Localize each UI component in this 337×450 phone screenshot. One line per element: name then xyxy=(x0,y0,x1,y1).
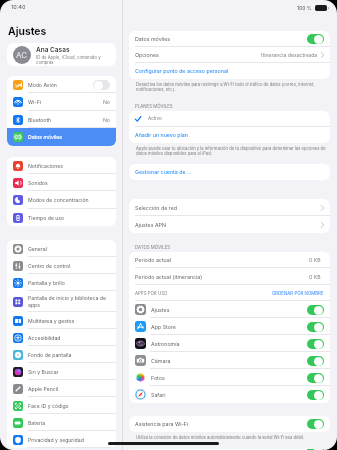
staticText: Activo xyxy=(148,116,162,122)
button[interactable]: Desactivar xyxy=(307,34,324,44)
button[interactable]: Modos de concentración xyxy=(7,191,116,209)
button[interactable]: Activo xyxy=(129,111,330,127)
staticText: DATOS MÓVILES xyxy=(135,245,171,250)
button[interactable]: Desactivar xyxy=(307,322,324,332)
button[interactable]: Selección de red xyxy=(129,199,330,216)
button[interactable]: Multitarea y gestos xyxy=(7,312,116,329)
button[interactable]: Bluetooth xyxy=(7,111,116,128)
staticText: Desactiva los datos móviles para restrin… xyxy=(136,82,328,92)
button[interactable]: Periodo actual xyxy=(129,252,330,268)
staticText: Siri y Buscar xyxy=(28,369,110,375)
staticText: Asistencia para Wi-Fi xyxy=(135,421,189,427)
button[interactable]: Fotos xyxy=(129,369,330,386)
button[interactable]: App Store xyxy=(129,318,330,335)
staticText: Ajustes xyxy=(8,25,47,37)
button[interactable]: Cámara xyxy=(129,352,330,369)
button[interactable]: Periodo actual (itinerancia) xyxy=(129,268,330,285)
button[interactable]: Sonidos xyxy=(7,174,116,191)
staticText: Ajustes APN xyxy=(135,222,166,228)
staticText: Wi-Fi xyxy=(28,99,103,105)
staticText: 0 KB xyxy=(309,274,321,280)
staticText: Utiliza la conexión de datos móviles aut… xyxy=(136,435,328,440)
button[interactable]: Desactivar xyxy=(307,339,324,349)
button[interactable]: ORDENAR POR NOMBRE xyxy=(272,291,324,296)
button[interactable]: Añadir un nuevo plan xyxy=(129,127,330,143)
button[interactable]: Batería xyxy=(7,414,116,431)
staticText: Periodo actual (itinerancia) xyxy=(135,274,203,280)
button[interactable]: Modo Avión xyxy=(7,76,116,93)
button[interactable]: Notificaciones xyxy=(7,157,116,174)
button[interactable]: Desactivar xyxy=(307,449,324,450)
staticText: Apple puede usar tu ubicación y la infor… xyxy=(136,146,328,156)
button[interactable]: Face ID y código xyxy=(7,397,116,414)
button[interactable]: General xyxy=(7,240,116,257)
button[interactable]: Opciones xyxy=(129,47,330,63)
staticText: Privacidad y seguridad xyxy=(28,437,110,443)
button[interactable]: Desactivar xyxy=(307,390,324,400)
staticText: Fotos xyxy=(151,375,165,381)
button[interactable]: Apple Pencil xyxy=(7,380,116,397)
staticText: Face ID y código xyxy=(28,403,110,409)
button[interactable]: Gestionar cuenta de ... xyxy=(129,164,330,180)
staticText: No xyxy=(103,99,110,105)
button[interactable]: Desactivar xyxy=(307,419,324,429)
staticText: Astronomía xyxy=(151,341,180,347)
button[interactable]: Ajustes xyxy=(129,301,330,318)
staticText: Ana Casas xyxy=(36,46,70,54)
button[interactable]: Activar xyxy=(93,80,110,90)
button[interactable]: Centro de control xyxy=(7,257,116,274)
staticText: ID de Apple, iCloud, contenido y compras xyxy=(36,55,112,65)
button[interactable]: Fondo de pantalla xyxy=(7,346,116,363)
staticText: APPS POR USO xyxy=(135,291,168,296)
staticText: Ajustes xyxy=(151,307,170,313)
staticText: No xyxy=(103,117,110,123)
button[interactable]: Datos móviles xyxy=(129,31,330,47)
button[interactable]: Modo de datos xyxy=(129,449,330,450)
button[interactable]: Accesibilidad xyxy=(7,329,116,346)
staticText: PLANES MÓVILES xyxy=(135,104,173,109)
staticText: Sonidos xyxy=(28,180,110,186)
button[interactable]: Desactivar xyxy=(307,373,324,383)
staticText: Gestionar cuenta de ... xyxy=(135,169,192,175)
staticText: Notificaciones xyxy=(28,163,110,169)
staticText: Multitarea y gestos xyxy=(28,318,110,324)
staticText: Tiempo de uso xyxy=(28,215,110,221)
staticText: Configurar punto de acceso personal xyxy=(135,68,229,74)
button[interactable]: Ajustes APN xyxy=(129,216,330,233)
staticText: Centro de control xyxy=(28,263,110,269)
button[interactable]: Asistencia para Wi-Fi xyxy=(129,416,330,432)
staticText: Pantalla de inicio y biblioteca de apps xyxy=(28,295,110,308)
staticText: Fondo de pantalla xyxy=(28,352,110,358)
staticText: Modos de concentración xyxy=(28,197,110,203)
staticText: Añadir un nuevo plan xyxy=(135,132,188,138)
button[interactable]: Siri y Buscar xyxy=(7,363,116,380)
staticText: Accesibilidad xyxy=(28,335,110,341)
staticText: 0 KB xyxy=(309,257,321,263)
staticText: Datos móviles xyxy=(28,134,110,140)
staticText: App Store xyxy=(151,324,176,330)
staticText: Pantalla y brillo xyxy=(28,280,110,286)
staticText: Opciones xyxy=(135,52,159,58)
button[interactable]: Astronomía xyxy=(129,335,330,352)
staticText: 100 % xyxy=(297,5,312,11)
button[interactable]: Desactivar xyxy=(307,305,324,315)
button[interactable]: Wi-Fi xyxy=(7,93,116,111)
staticText: Datos móviles xyxy=(135,36,171,42)
staticText: 10:40 xyxy=(11,4,26,11)
staticText: Modo Avión xyxy=(28,82,93,88)
button[interactable]: AC xyxy=(7,43,116,66)
button[interactable]: Datos móviles xyxy=(7,128,116,146)
button[interactable]: Pantalla de inicio y biblioteca de apps xyxy=(7,291,116,312)
button[interactable]: Configurar punto de acceso personal xyxy=(129,63,330,79)
button[interactable]: Desactivar xyxy=(307,356,324,366)
staticText: Bluetooth xyxy=(28,117,103,123)
staticText: Batería xyxy=(28,420,110,426)
button[interactable]: Pantalla y brillo xyxy=(7,274,116,291)
staticText: Apple Pencil xyxy=(28,386,110,392)
staticText: Itinerancia desactivada xyxy=(261,52,318,58)
button[interactable]: Privacidad y seguridad xyxy=(7,431,116,448)
button[interactable]: Safari xyxy=(129,386,330,403)
button[interactable]: Tiempo de uso xyxy=(7,209,116,226)
staticText: Cámara xyxy=(151,358,171,364)
